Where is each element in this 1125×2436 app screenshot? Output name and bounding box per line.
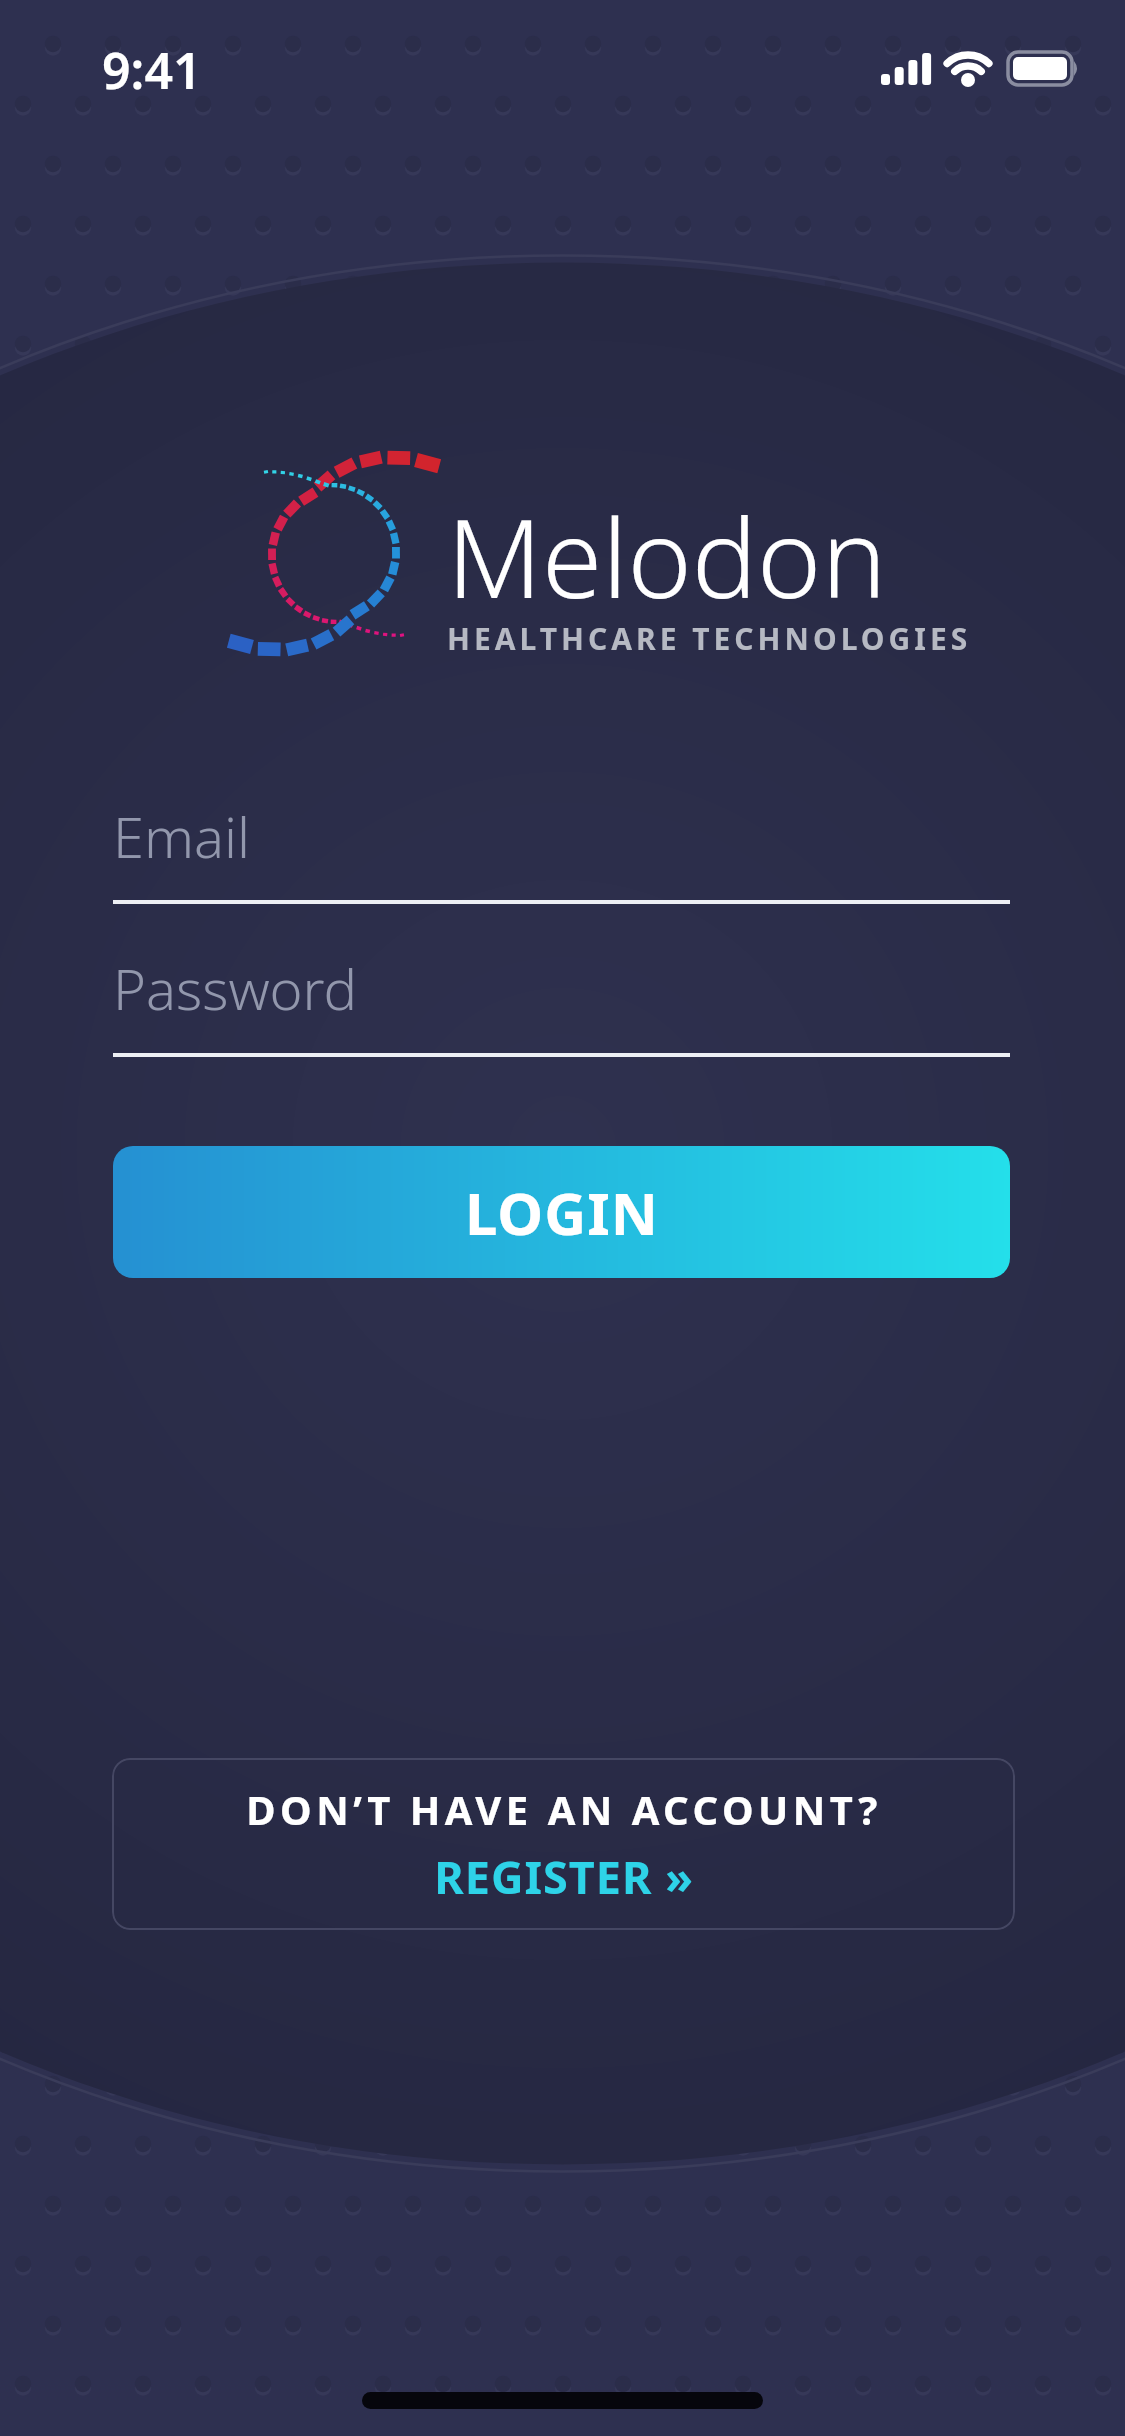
button[interactable]: DON’T HAVE AN ACCOUNT? — [112, 1758, 1015, 1930]
staticText: HEALTHCARE TECHNOLOGIES — [447, 618, 972, 659]
staticText: REGISTER » — [434, 1846, 694, 1907]
staticText: Melodon — [447, 481, 887, 629]
staticText: DON’T HAVE AN ACCOUNT? — [246, 1782, 882, 1836]
staticText: Password — [113, 950, 358, 1026]
staticText: Email — [113, 798, 250, 874]
button[interactable]: LOGIN — [113, 1146, 1010, 1278]
staticText: LOGIN — [465, 1173, 659, 1252]
button[interactable]: Email — [113, 798, 1010, 904]
staticText: 9:41 — [102, 36, 202, 104]
button[interactable]: Password — [113, 950, 1010, 1057]
